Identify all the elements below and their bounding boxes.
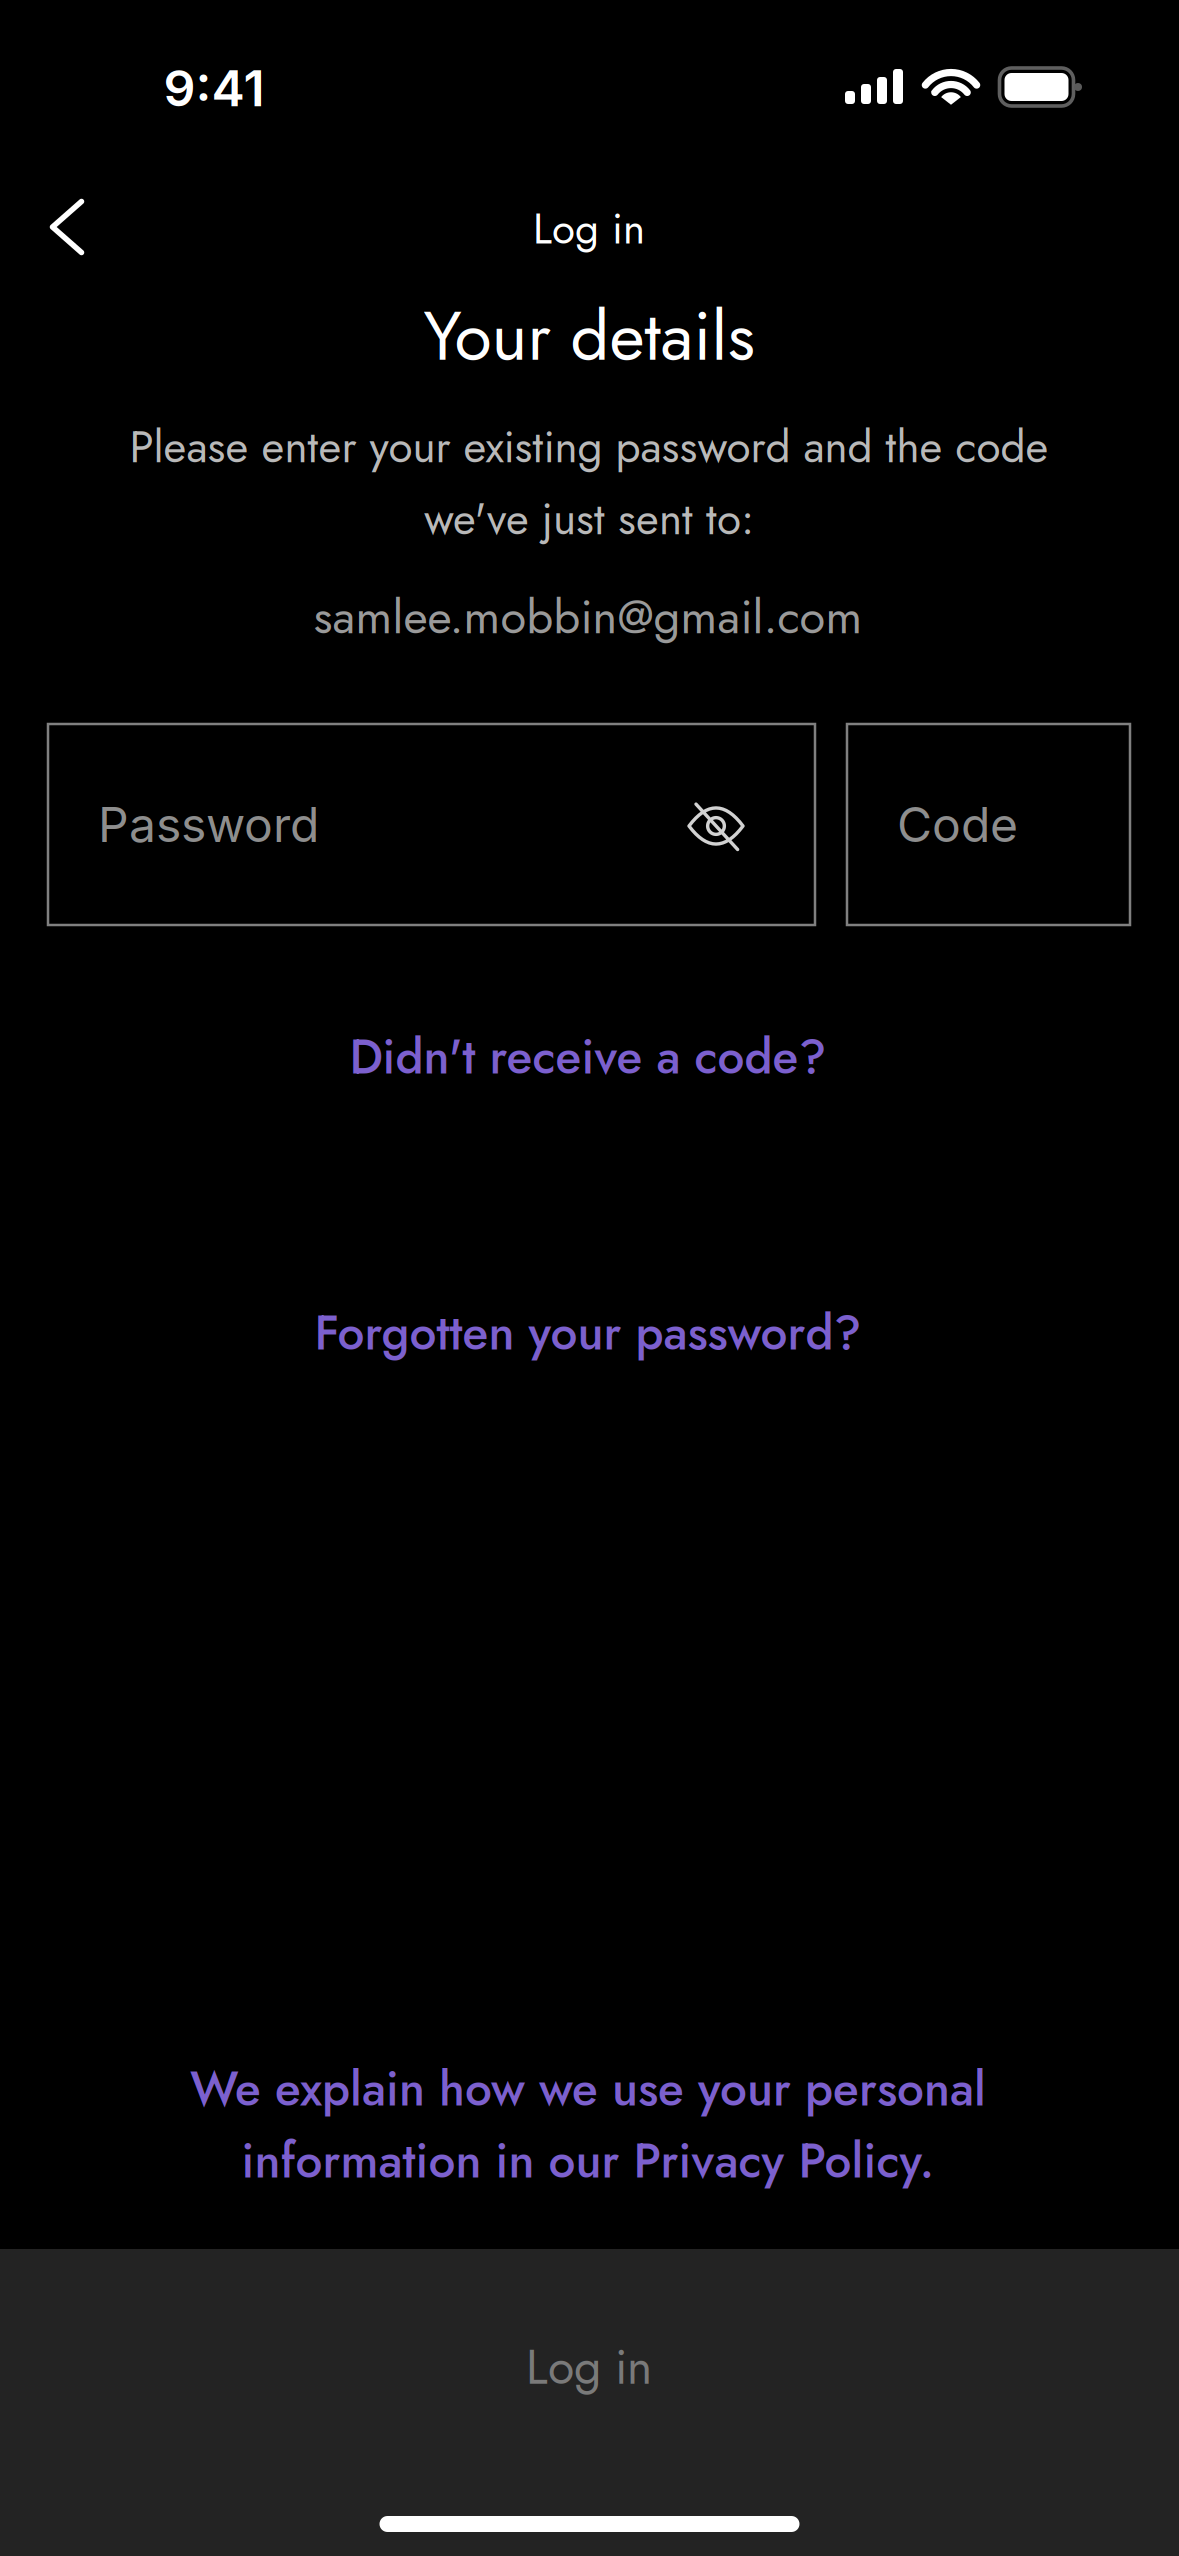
button[interactable]: Password: [48, 724, 815, 925]
staticText: 9:41: [163, 58, 264, 118]
button[interactable]: Back: [34, 183, 99, 270]
staticText: Forgotten your password?: [314, 1298, 861, 1367]
button[interactable]: Show password: [668, 786, 764, 866]
staticText: samlee.mobbin@gmail.com: [313, 583, 862, 651]
button[interactable]: We explain how we use your personal: [190, 2054, 986, 2195]
button[interactable]: Log in: [0, 2249, 1179, 2556]
staticText: Code: [897, 795, 1018, 854]
staticText: Log in: [526, 2332, 652, 2402]
staticText: Didn't receive a code?: [349, 1022, 826, 1091]
button[interactable]: Didn't receive a code?: [339, 1012, 836, 1101]
staticText: information in our Privacy Policy.: [241, 2126, 934, 2195]
staticText: Your details: [423, 287, 754, 385]
staticText: Log in: [533, 199, 645, 259]
staticText: we've just sent to:: [424, 487, 754, 551]
staticText: Please enter your existing password and …: [129, 415, 1048, 479]
staticText: We explain how we use your personal: [190, 2054, 986, 2123]
staticText: Password: [98, 795, 319, 854]
button[interactable]: Forgotten your password?: [304, 1288, 871, 1377]
button[interactable]: Code: [847, 724, 1130, 925]
